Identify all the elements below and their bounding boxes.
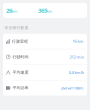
staticText: km: [12, 9, 17, 14]
staticText: 264 w/1188m: [60, 85, 83, 91]
button[interactable]: 平均速度: [3, 65, 87, 80]
staticText: 212 min: [69, 54, 83, 59]
staticText: 365: [38, 6, 47, 15]
staticText: 行驶时间: [12, 54, 28, 59]
staticText: 26: [6, 6, 12, 15]
staticText: 4.4 km/h: [68, 70, 83, 75]
staticText: 本次骑行数据: [4, 25, 28, 30]
staticText: 16 km: [72, 39, 83, 44]
button[interactable]: 平均功率: [3, 80, 87, 96]
staticText: 行驶里程: [12, 39, 28, 44]
staticText: 平均速度: [12, 70, 28, 75]
staticText: 平均功率: [13, 85, 29, 90]
button[interactable]: 行驶时间: [3, 49, 87, 64]
button[interactable]: 行驶里程: [3, 34, 87, 49]
staticText: km: [47, 9, 52, 14]
